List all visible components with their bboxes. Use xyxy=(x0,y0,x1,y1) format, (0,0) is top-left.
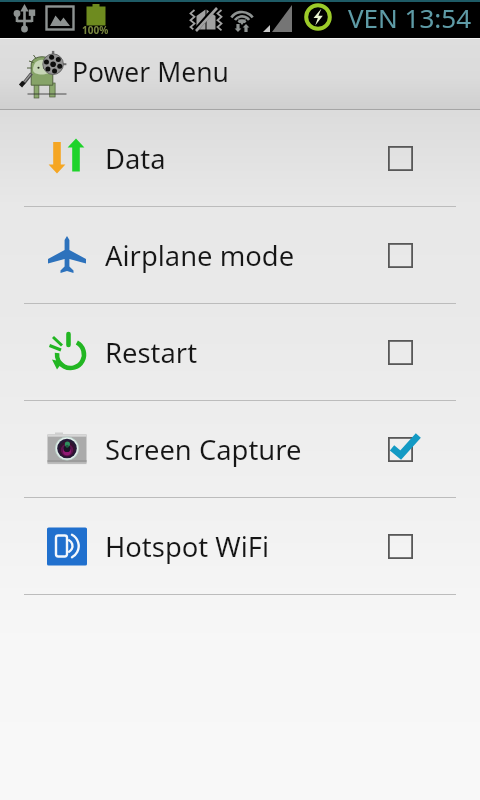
staticText: Restart xyxy=(105,334,198,371)
staticText: 100% xyxy=(82,23,109,37)
button[interactable]: Screen Capture xyxy=(0,401,480,497)
button[interactable]: Airplane mode xyxy=(0,207,480,303)
staticText: VEN 13:54 xyxy=(348,0,472,35)
button[interactable]: Restart toggle xyxy=(376,328,424,376)
button[interactable]: Data toggle xyxy=(376,134,424,182)
button[interactable]: Screen Capture toggle xyxy=(376,425,424,473)
staticText: Airplane mode xyxy=(105,237,295,274)
button[interactable]: App icon xyxy=(17,50,67,98)
staticText: Hotspot WiFi xyxy=(105,528,270,565)
staticText: Data xyxy=(105,140,166,177)
button[interactable]: Hotspot WiFi xyxy=(0,498,480,594)
staticText: Power Menu xyxy=(72,54,229,90)
button[interactable]: Data xyxy=(0,110,480,206)
button[interactable]: Hotspot WiFi toggle xyxy=(376,522,424,570)
button[interactable]: Airplane mode toggle xyxy=(376,231,424,279)
button[interactable]: Restart xyxy=(0,304,480,400)
staticText: Screen Capture xyxy=(105,431,302,468)
